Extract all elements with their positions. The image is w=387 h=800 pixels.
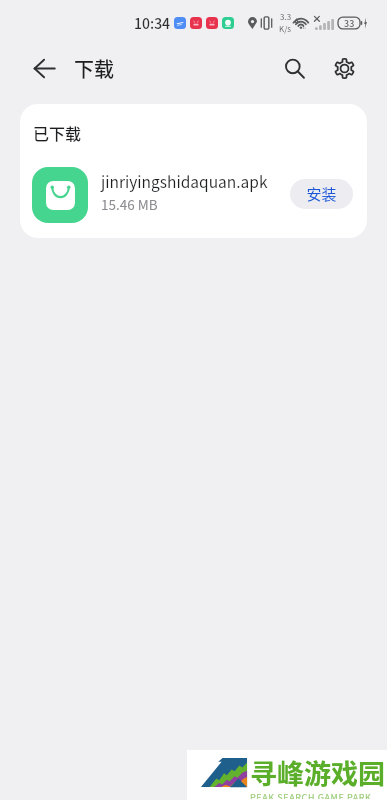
staticText: jinriyingshidaquan.apk [101, 170, 268, 192]
staticText: 已下载 [33, 121, 82, 144]
staticText: 安装 [306, 183, 337, 205]
button[interactable]: Settings [323, 47, 365, 89]
staticText: 下载 [74, 54, 114, 83]
button[interactable]: jinriyingshidaquan.apk [20, 144, 367, 223]
staticText: 3.3 [280, 11, 292, 23]
button[interactable]: Search [273, 47, 315, 89]
staticText: PEAK SEARCH GAME PARK [250, 791, 372, 799]
staticText: 10:34 [134, 13, 171, 33]
staticText: 寻峰游戏园 [250, 753, 385, 792]
staticText: 33 [344, 17, 355, 30]
staticText: K/s [279, 23, 292, 35]
button[interactable]: Back [22, 46, 66, 90]
button[interactable]: 安装 [290, 179, 353, 209]
staticText: 15.46 MB [101, 194, 158, 214]
